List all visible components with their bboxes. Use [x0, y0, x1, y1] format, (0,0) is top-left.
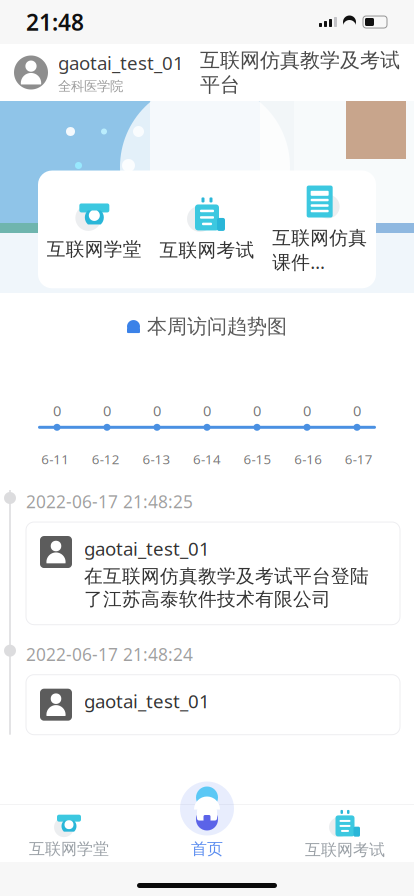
- staticText: gaotai_test_01: [58, 50, 184, 75]
- staticText: 2022-06-17 21:48:25: [26, 490, 193, 513]
- button[interactable]: 首页: [179, 780, 235, 836]
- staticText: 互联网仿真课件…: [272, 226, 367, 274]
- staticText: 2022-06-17 21:48:24: [26, 643, 193, 666]
- staticText: 0: [153, 401, 161, 420]
- staticText: 全科医学院: [58, 78, 123, 95]
- staticText: 互联网学堂: [47, 238, 142, 261]
- staticText: 首页: [191, 839, 223, 859]
- staticText: 互联网考试: [159, 239, 254, 262]
- staticText: 0: [103, 401, 111, 420]
- staticText: 本周访问趋势图: [147, 314, 287, 339]
- staticText: 在互联网仿真教学及考试平台登陆了江苏高泰软件技术有限公司: [84, 565, 369, 611]
- staticText: gaotai_test_01: [84, 536, 210, 561]
- button[interactable]: 互联网考试: [276, 809, 414, 860]
- staticText: 0: [253, 401, 261, 420]
- button[interactable]: 首页: [138, 810, 276, 859]
- button[interactable]: 互联网考试: [151, 197, 263, 262]
- staticText: 6-16: [294, 450, 322, 468]
- staticText: 0: [353, 401, 361, 420]
- button[interactable]: gaotai_test_01: [26, 675, 400, 735]
- staticText: 0: [303, 401, 311, 420]
- button[interactable]: 互联网学堂: [38, 198, 151, 261]
- button[interactable]: gaotai_test_01: [26, 522, 400, 625]
- staticText: 互联网仿真教学及考试平台: [200, 48, 400, 97]
- staticText: 21:48: [26, 7, 84, 37]
- staticText: 互联网考试: [305, 840, 385, 860]
- staticText: 6-12: [92, 450, 120, 468]
- button[interactable]: 互联网仿真课件…: [263, 184, 376, 274]
- staticText: 互联网学堂: [29, 839, 109, 859]
- staticText: 0: [53, 401, 61, 420]
- button[interactable]: gaotai_test_01: [14, 50, 184, 95]
- staticText: gaotai_test_01: [84, 689, 210, 713]
- button[interactable]: 互联网学堂: [0, 810, 138, 859]
- staticText: 6-14: [193, 450, 221, 468]
- staticText: 6-15: [244, 450, 272, 468]
- staticText: 6-11: [41, 450, 69, 468]
- staticText: 6-17: [345, 450, 373, 468]
- staticText: 6-13: [142, 450, 170, 468]
- staticText: 0: [203, 401, 211, 420]
